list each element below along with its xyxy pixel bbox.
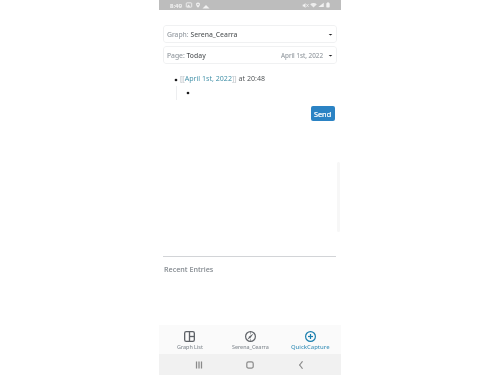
staticText: 8:49 xyxy=(170,2,182,10)
staticText: [[April 1st, 2022]] at 20:48 xyxy=(180,73,266,83)
staticText: Serena_Cearra xyxy=(232,343,269,350)
staticText: QuickCapture xyxy=(291,343,330,351)
button[interactable]: Page: Today xyxy=(163,46,337,64)
staticText: Page: Today xyxy=(167,51,206,60)
staticText: Send xyxy=(314,109,332,119)
button[interactable]: Serena_Cearra xyxy=(220,325,281,354)
button[interactable]: Graph: Serena_Cearra xyxy=(163,25,337,43)
button[interactable]: QuickCapture xyxy=(280,325,341,354)
button[interactable]: Recents xyxy=(181,354,217,375)
staticText: Graph: Serena_Cearra xyxy=(167,30,238,39)
button[interactable]: Back xyxy=(283,354,319,375)
staticText: April 1st, 2022 xyxy=(281,51,324,60)
button[interactable]: Send xyxy=(311,106,335,121)
button[interactable]: Graph List xyxy=(159,325,220,354)
staticText: Graph List xyxy=(177,343,203,350)
button[interactable]: Home xyxy=(232,354,268,375)
staticText: Recent Entries xyxy=(164,264,214,274)
